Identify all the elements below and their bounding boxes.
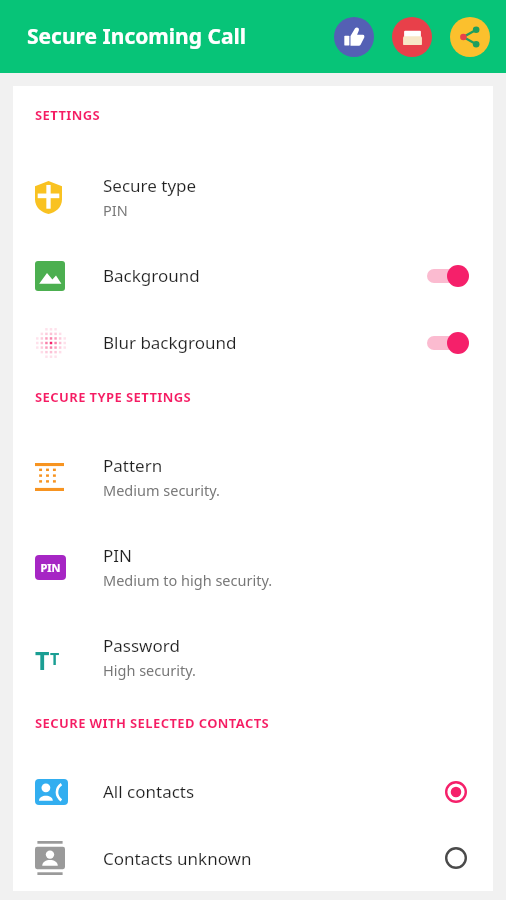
staticText: SECURE WITH SELECTED CONTACTS [35, 714, 270, 732]
button[interactable]: Background [13, 242, 493, 309]
staticText: Secure Incoming Call [27, 22, 247, 51]
staticText: Medium security. [103, 480, 220, 500]
button[interactable]: T [13, 612, 493, 702]
staticText: T [35, 643, 50, 671]
button[interactable] [425, 330, 471, 356]
staticText: Password [103, 634, 180, 657]
staticText: Background [103, 264, 200, 287]
staticText: SETTINGS [35, 106, 101, 124]
staticText: PIN [103, 544, 132, 567]
staticText: Blur background [103, 331, 237, 354]
button[interactable]: Mail [392, 17, 432, 57]
staticText: PIN [103, 200, 128, 220]
button[interactable]: Pattern [13, 432, 493, 522]
staticText: Medium to high security. [103, 570, 273, 590]
button[interactable]: Blur background [13, 309, 493, 376]
button[interactable]: Not selected [441, 843, 471, 873]
button[interactable]: PIN [13, 522, 493, 612]
staticText: High security. [103, 660, 196, 680]
button[interactable] [425, 263, 471, 289]
staticText: T [50, 648, 60, 670]
staticText: Secure type [103, 174, 197, 197]
staticText: All contacts [103, 780, 195, 803]
button[interactable]: All contacts [13, 758, 493, 825]
button[interactable]: Share [450, 17, 490, 57]
button[interactable]: Like [334, 17, 374, 57]
staticText: PIN [40, 560, 61, 575]
staticText: Pattern [103, 454, 163, 477]
button[interactable]: Secure type [13, 152, 493, 242]
button[interactable]: Selected [441, 777, 471, 807]
staticText: Contacts unknown [103, 847, 252, 870]
staticText: SECURE TYPE SETTINGS [35, 388, 192, 406]
button[interactable]: Contacts unknown [13, 825, 493, 891]
